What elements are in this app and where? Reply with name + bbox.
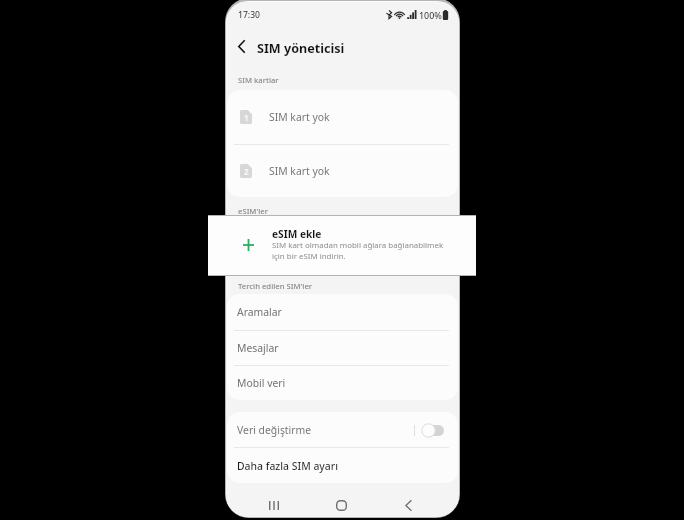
- staticText: 1: [244, 112, 249, 123]
- button[interactable]: Back: [395, 492, 421, 518]
- staticText: Aramalar: [237, 305, 282, 319]
- button[interactable]: Mesajlar: [227, 330, 458, 365]
- staticText: SIM kartlar: [238, 75, 279, 85]
- button[interactable]: Veri değiştirme switch, off: [421, 412, 446, 448]
- staticText: 17:30: [238, 9, 261, 21]
- button[interactable]: Mobil veri: [227, 365, 458, 400]
- staticText: SIM yöneticisi: [257, 40, 345, 57]
- button[interactable]: eSIM ekle: [208, 216, 476, 275]
- staticText: 2: [244, 166, 249, 177]
- staticText: Daha fazla SIM ayarı: [237, 459, 338, 473]
- button[interactable]: Home: [328, 492, 354, 518]
- staticText: Tercih edilen SIM'ler: [238, 281, 313, 291]
- staticText: Mesajlar: [237, 341, 279, 355]
- staticText: Mobil veri: [237, 376, 286, 390]
- button[interactable]: 1: [227, 90, 458, 144]
- staticText: SIM kart yok: [269, 110, 330, 124]
- staticText: SIM kart yok: [269, 164, 330, 178]
- button[interactable]: Recent apps: [261, 492, 287, 518]
- button[interactable]: Daha fazla SIM ayarı: [227, 448, 458, 484]
- button[interactable]: Navigate up: [232, 37, 251, 56]
- button[interactable]: 2: [227, 144, 458, 198]
- staticText: Veri değiştirme: [237, 423, 312, 437]
- staticText: eSIM ekle: [272, 227, 322, 241]
- staticText: SIM kart olmadan mobil ağlara bağlanabil…: [272, 240, 444, 261]
- button[interactable]: Veri değiştirme: [227, 412, 458, 448]
- button[interactable]: Aramalar: [227, 294, 458, 329]
- staticText: eSIM'ler: [238, 206, 268, 216]
- staticText: 100%: [419, 9, 442, 21]
